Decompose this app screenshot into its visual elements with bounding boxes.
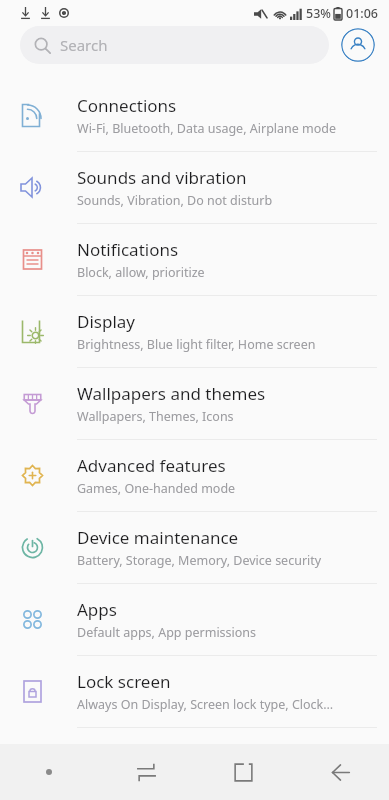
staticText: Advanced features (77, 454, 226, 477)
button[interactable]: Home (195, 744, 292, 800)
button[interactable]: Apps (0, 584, 389, 656)
staticText: Sounds and vibration (77, 166, 247, 189)
staticText: Search (60, 35, 108, 55)
staticText: Wallpapers and themes (77, 382, 266, 405)
button[interactable]: Notifications (0, 224, 389, 296)
button[interactable]: Recents (98, 744, 195, 800)
staticText: Always On Display, Screen lock type, Clo… (77, 696, 334, 713)
button[interactable]: Lock screen (0, 656, 389, 728)
staticText: Connections (77, 94, 177, 117)
staticText: Notifications (77, 238, 179, 261)
button[interactable]: Advanced features (0, 440, 389, 512)
button[interactable]: Back (292, 744, 389, 800)
button[interactable]: Device maintenance (0, 512, 389, 584)
staticText: Wallpapers, Themes, Icons (77, 408, 234, 425)
staticText: Brightness, Blue light filter, Home scre… (77, 336, 316, 353)
staticText: Wi-Fi, Bluetooth, Data usage, Airplane m… (77, 120, 337, 137)
staticText: Lock screen (77, 670, 171, 693)
staticText: Sounds, Vibration, Do not disturb (77, 192, 273, 209)
button[interactable]: Connections (0, 80, 389, 152)
staticText: Apps (77, 598, 117, 621)
staticText: 01:06 (346, 5, 379, 22)
button[interactable]: Account (341, 28, 375, 62)
button[interactable]: Display (0, 296, 389, 368)
button[interactable]: Search (20, 26, 329, 64)
button[interactable]: Sounds and vibration (0, 152, 389, 224)
staticText: Default apps, App permissions (77, 624, 257, 641)
staticText: Battery, Storage, Memory, Device securit… (77, 552, 322, 569)
button[interactable]: Wallpapers and themes (0, 368, 389, 440)
staticText: 53% (306, 5, 331, 22)
staticText: Block, allow, prioritize (77, 264, 205, 281)
staticText: Device maintenance (77, 526, 239, 549)
staticText: Games, One-handed mode (77, 480, 236, 497)
staticText: Display (77, 310, 135, 333)
